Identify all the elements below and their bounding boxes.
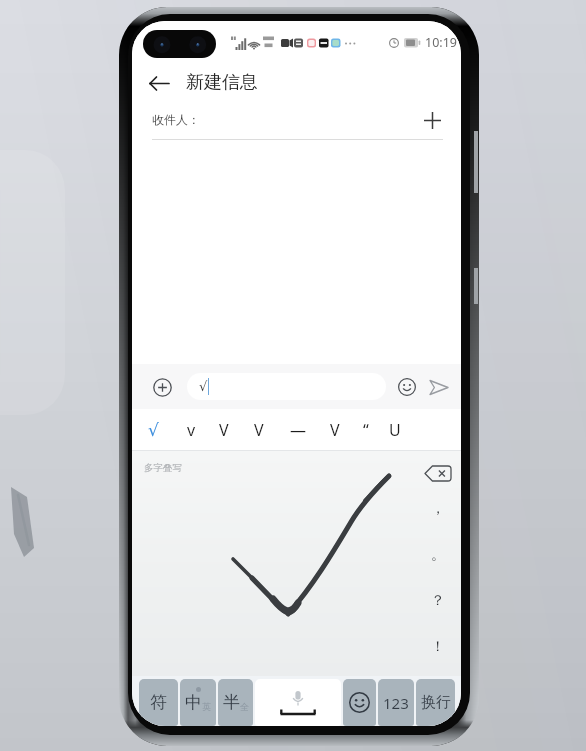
button[interactable]: Emoji keyboard <box>343 679 376 726</box>
staticText: V <box>330 419 340 441</box>
staticText: √ <box>199 379 208 394</box>
staticText: “ <box>363 419 369 441</box>
button[interactable]: ！ <box>415 624 461 670</box>
button[interactable]: √ <box>136 409 170 450</box>
staticText: 10:19 <box>425 34 457 51</box>
button[interactable]: Emoji <box>395 375 419 399</box>
staticText: 多字叠写 <box>144 462 182 474</box>
staticText: √ <box>148 420 159 440</box>
staticText: — <box>290 419 307 441</box>
button[interactable]: U <box>378 409 412 450</box>
staticText: 全 <box>240 701 249 712</box>
staticText: 收件人： <box>152 112 200 127</box>
staticText: ！ <box>431 638 445 656</box>
staticText: V <box>219 419 229 441</box>
staticText: 新建信息 <box>186 71 258 94</box>
staticText: 中 <box>185 692 202 713</box>
button[interactable]: — <box>281 409 315 450</box>
button[interactable]: ？ <box>415 578 461 624</box>
button[interactable]: 换行 <box>416 679 455 726</box>
button[interactable]: V <box>242 409 276 450</box>
button[interactable]: Send <box>427 375 451 399</box>
button[interactable]: v <box>174 409 208 450</box>
staticText: 。 <box>431 546 445 564</box>
staticText: 英 <box>202 701 211 712</box>
staticText: ？ <box>431 592 445 610</box>
button[interactable]: V <box>207 409 241 450</box>
button[interactable]: Space, hold for voice input <box>255 679 341 726</box>
staticText: V <box>254 419 264 441</box>
button[interactable]: Add recipient <box>421 109 443 131</box>
staticText: 符 <box>150 692 167 713</box>
staticText: U <box>389 419 401 441</box>
button[interactable]: Add attachment <box>149 374 175 400</box>
button[interactable]: ， <box>415 485 461 532</box>
button[interactable]: V <box>318 409 352 450</box>
button[interactable]: Backspace <box>420 461 456 485</box>
staticText: 123 <box>383 693 409 713</box>
button[interactable]: 符 <box>139 679 178 726</box>
staticText: v <box>187 419 196 441</box>
button[interactable]: 中 <box>180 679 216 726</box>
button[interactable]: 123 <box>378 679 414 726</box>
button[interactable]: √ <box>187 373 386 400</box>
button[interactable]: 。 <box>415 532 461 578</box>
staticText: 半 <box>223 692 240 713</box>
staticText: 换行 <box>421 693 451 712</box>
button[interactable]: “ <box>349 409 383 450</box>
staticText: ， <box>431 500 445 518</box>
button[interactable]: 半 <box>218 679 253 726</box>
button[interactable]: Back <box>144 68 174 98</box>
button[interactable]: 收件人： <box>152 100 443 139</box>
